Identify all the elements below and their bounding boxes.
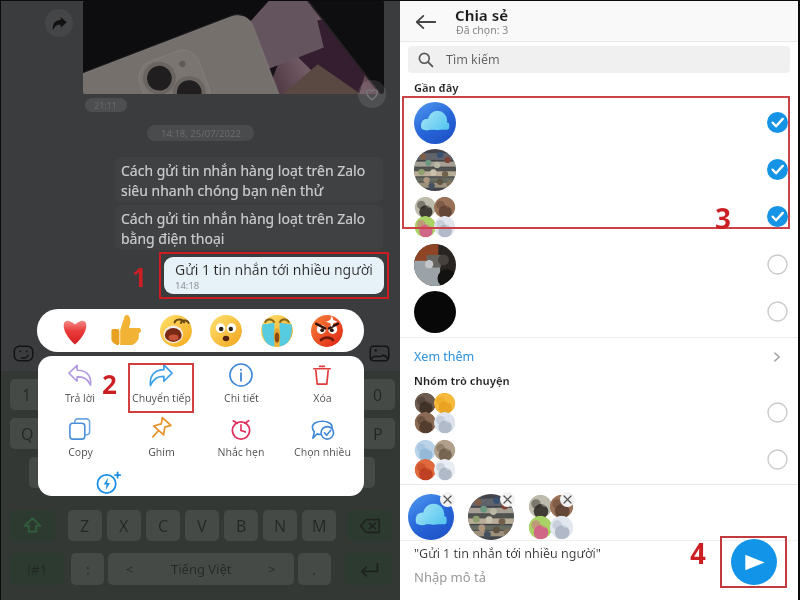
staticText: Q [21, 423, 34, 445]
staticText: 14:18 [175, 279, 200, 292]
button[interactable]: M [302, 510, 336, 541]
staticText: 14:18, 25/07/2022 [161, 127, 241, 140]
button[interactable]: Copy [42, 413, 118, 459]
staticText: Chuyển tiếp [132, 391, 191, 405]
staticText: < [126, 560, 134, 578]
button[interactable]: W [49, 418, 83, 449]
button[interactable]: R [127, 418, 161, 449]
staticText: X [119, 515, 129, 537]
button[interactable]: 0 [361, 379, 395, 410]
button[interactable]: angry [310, 314, 343, 347]
button[interactable]: O [322, 418, 356, 449]
button[interactable]: Thích [358, 80, 386, 108]
button[interactable]: Quay lại [412, 8, 440, 36]
button[interactable]: A [29, 457, 63, 488]
button[interactable]: Chọn nhiều [284, 413, 360, 459]
button[interactable]: 1 [10, 379, 44, 410]
button[interactable]: E [88, 418, 122, 449]
button[interactable] [400, 289, 798, 334]
staticText: Copy [68, 445, 93, 459]
button[interactable]: Z [68, 510, 102, 541]
button[interactable]: Chi tiết [203, 359, 279, 405]
button[interactable]: L [341, 457, 375, 488]
button[interactable]: 6 [205, 379, 239, 410]
button[interactable]: Chuyển tiếp [123, 359, 199, 405]
staticText: Tìm kiếm [446, 51, 500, 68]
staticText: Nhóm trò chuyện [414, 373, 510, 388]
staticText: Ghim [148, 445, 175, 459]
button[interactable] [400, 242, 798, 287]
button[interactable]: C [146, 510, 180, 541]
button[interactable] [400, 147, 798, 192]
button[interactable]: Xem thêm [400, 344, 798, 369]
button[interactable]: 8 [283, 379, 317, 410]
button[interactable]: Q [10, 418, 44, 449]
button[interactable]: 3 [88, 379, 122, 410]
staticText: C [158, 515, 169, 537]
button[interactable]: < [108, 553, 294, 585]
button[interactable]: Chuyển tiếp [45, 9, 73, 37]
staticText: Chi tiết [224, 391, 259, 405]
button[interactable]: H [224, 457, 258, 488]
button[interactable]: Tìm kiếm [408, 46, 790, 73]
button[interactable]: T [166, 418, 200, 449]
button[interactable]: 2 [49, 379, 83, 410]
staticText: Gần đây [414, 80, 459, 95]
button[interactable]: Bỏ chọn [500, 492, 515, 507]
button[interactable]: Enter [345, 553, 392, 585]
button[interactable] [400, 437, 798, 482]
button[interactable]: 5 [166, 379, 200, 410]
button[interactable] [400, 390, 798, 435]
button[interactable]: K [302, 457, 336, 488]
button[interactable]: Shift [10, 510, 55, 541]
button[interactable]: Trả lời [42, 359, 118, 405]
button[interactable]: Xóa [284, 359, 360, 405]
button[interactable]: cry [260, 314, 293, 347]
button[interactable]: like [108, 314, 141, 347]
button[interactable]: wow [209, 314, 242, 347]
button[interactable]: N [263, 510, 297, 541]
staticText: 7 [256, 384, 266, 406]
button[interactable]: Nhắc hẹn [203, 413, 279, 459]
staticText: 2 [102, 366, 117, 401]
button[interactable]: 9 [322, 379, 356, 410]
staticText: 1 [22, 384, 32, 406]
button[interactable] [400, 100, 798, 145]
button[interactable]: Hình ảnh [366, 340, 392, 366]
button[interactable]: heart [58, 314, 91, 347]
button[interactable]: Gửi [731, 539, 777, 585]
button[interactable]: haha [159, 314, 192, 347]
button[interactable]: V [185, 510, 219, 541]
staticText: > [268, 560, 276, 578]
staticText: 3 [715, 199, 732, 237]
button[interactable]: Gửi 1 tin nhắn tới nhiều người [164, 257, 384, 294]
button[interactable] [400, 194, 798, 239]
button[interactable]: I [283, 418, 317, 449]
button[interactable]: Bỏ chọn [440, 492, 455, 507]
button[interactable]: U [244, 418, 278, 449]
button[interactable]: Sticker [10, 340, 36, 366]
button[interactable]: D [107, 457, 141, 488]
button[interactable]: Bỏ chọn [560, 492, 575, 507]
staticText: Trả lời [65, 391, 95, 405]
button[interactable]: Ghim [123, 413, 199, 459]
button[interactable]: X [107, 510, 141, 541]
button[interactable]: S [68, 457, 102, 488]
button[interactable]: Nhanh [96, 469, 122, 495]
button[interactable]: Xóa [347, 510, 392, 541]
button[interactable]: 4 [127, 379, 161, 410]
button[interactable]: B [224, 510, 258, 541]
button[interactable]: P [361, 418, 395, 449]
button[interactable]: 7 [244, 379, 278, 410]
button[interactable]: Y [205, 418, 239, 449]
staticText: Chọn nhiều [294, 445, 351, 459]
staticText: 0 [373, 384, 383, 406]
